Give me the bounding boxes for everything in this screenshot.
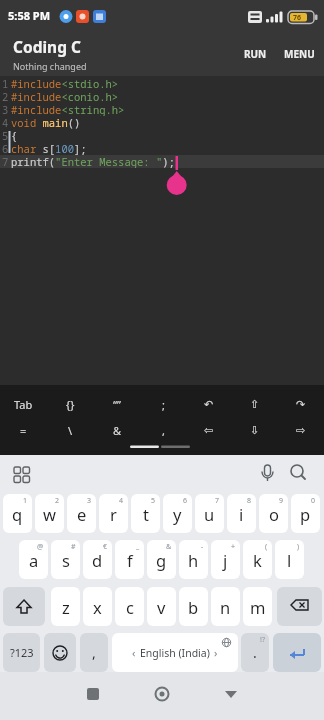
button[interactable]	[273, 633, 321, 672]
button[interactable]: ⇧	[232, 390, 278, 418]
button[interactable]: &	[94, 416, 140, 444]
staticText: 2	[2, 90, 13, 103]
button[interactable]: a	[19, 540, 48, 579]
button[interactable]: f	[115, 540, 144, 579]
staticText: printf("Enter Message: ");	[11, 155, 175, 168]
button[interactable]: Tab	[0, 390, 47, 418]
staticText: &	[166, 542, 172, 552]
staticText: _	[136, 542, 140, 552]
button[interactable]: ⇩	[232, 416, 278, 444]
staticText: ,	[162, 423, 165, 438]
button[interactable]: ‹	[112, 633, 238, 672]
button[interactable]	[147, 679, 177, 709]
staticText: 8	[247, 496, 252, 506]
button[interactable]: ,	[80, 633, 108, 672]
staticText: l	[287, 549, 292, 571]
staticText: f	[127, 549, 133, 571]
staticText: ⇧	[250, 398, 260, 411]
button[interactable]: p	[291, 494, 320, 533]
button[interactable]: b	[179, 587, 208, 626]
button[interactable]: u	[195, 494, 224, 533]
button[interactable]: d	[83, 540, 112, 579]
button[interactable]: ⇨	[278, 416, 324, 444]
staticText: €	[103, 542, 108, 552]
button[interactable]	[285, 459, 311, 485]
staticText: g	[156, 549, 167, 571]
staticText: 6	[2, 142, 13, 155]
staticText: #include<conio.h>	[11, 90, 119, 103]
staticText: English (India)	[140, 646, 210, 660]
staticText: ⇨	[296, 424, 306, 437]
button[interactable]: q	[3, 494, 32, 533]
button[interactable]: .	[241, 633, 269, 672]
staticText: u	[204, 503, 215, 525]
button[interactable]: ?123	[3, 633, 40, 672]
button[interactable]: ,	[140, 416, 186, 444]
staticText: 0	[311, 496, 316, 506]
button[interactable]: c	[115, 587, 144, 626]
staticText: r	[110, 503, 117, 525]
staticText: Nothing changed	[13, 60, 87, 72]
staticText: {	[11, 129, 18, 142]
staticText: -	[201, 542, 204, 552]
staticText: 4	[119, 496, 124, 506]
button[interactable]: z	[51, 587, 80, 626]
button[interactable]: n	[211, 587, 240, 626]
button[interactable]	[8, 461, 36, 489]
button[interactable]: l	[275, 540, 304, 579]
button[interactable]: i	[227, 494, 256, 533]
button[interactable]	[78, 679, 108, 709]
button[interactable]: e	[67, 494, 96, 533]
button[interactable]: v	[147, 587, 176, 626]
button[interactable]	[3, 587, 45, 626]
button[interactable]: x	[83, 587, 112, 626]
staticText: z	[62, 596, 70, 618]
button[interactable]: r	[99, 494, 128, 533]
button[interactable]	[254, 459, 280, 485]
button[interactable]: g	[147, 540, 176, 579]
staticText: 2	[55, 496, 60, 506]
button[interactable]	[277, 587, 322, 626]
button[interactable]: \	[47, 416, 94, 444]
staticText: 5	[151, 496, 156, 506]
staticText: void main()	[11, 116, 81, 129]
staticText: h	[188, 549, 199, 571]
staticText: .	[253, 643, 257, 662]
button[interactable]: h	[179, 540, 208, 579]
staticText: o	[269, 503, 279, 525]
button[interactable]: j	[211, 540, 240, 579]
button[interactable]: =	[0, 416, 47, 444]
staticText: ,	[92, 643, 96, 662]
button[interactable]: “”	[94, 390, 140, 418]
button[interactable]: s	[51, 540, 80, 579]
button[interactable]: ⇦	[186, 416, 232, 444]
staticText: 5:58 PM	[8, 8, 51, 23]
button[interactable]: k	[243, 540, 272, 579]
button[interactable]: t	[131, 494, 160, 533]
button[interactable]: y	[163, 494, 192, 533]
staticText: n	[220, 596, 231, 618]
staticText: 9	[279, 496, 284, 506]
staticText: y	[173, 503, 182, 525]
button[interactable]: ↶	[186, 390, 232, 418]
staticText: )	[297, 542, 300, 552]
staticText: ‹	[132, 645, 136, 660]
button[interactable]: o	[259, 494, 288, 533]
staticText: +	[231, 542, 236, 552]
staticText: &	[113, 423, 122, 438]
button[interactable]	[44, 633, 76, 672]
button[interactable]	[216, 679, 246, 709]
staticText: !?	[260, 635, 265, 645]
staticText: k	[253, 549, 262, 571]
button[interactable]: m	[243, 587, 272, 626]
staticText: RUN	[244, 47, 267, 61]
button[interactable]: RUN	[237, 42, 273, 66]
button[interactable]: w	[35, 494, 64, 533]
button[interactable]: ;	[140, 390, 186, 418]
staticText: ↷	[296, 398, 306, 411]
button[interactable]: {}	[47, 390, 94, 418]
button[interactable]: MENU	[278, 42, 320, 66]
staticText: ⇦	[204, 424, 214, 437]
staticText: ?123	[10, 645, 34, 660]
button[interactable]: ↷	[278, 390, 324, 418]
